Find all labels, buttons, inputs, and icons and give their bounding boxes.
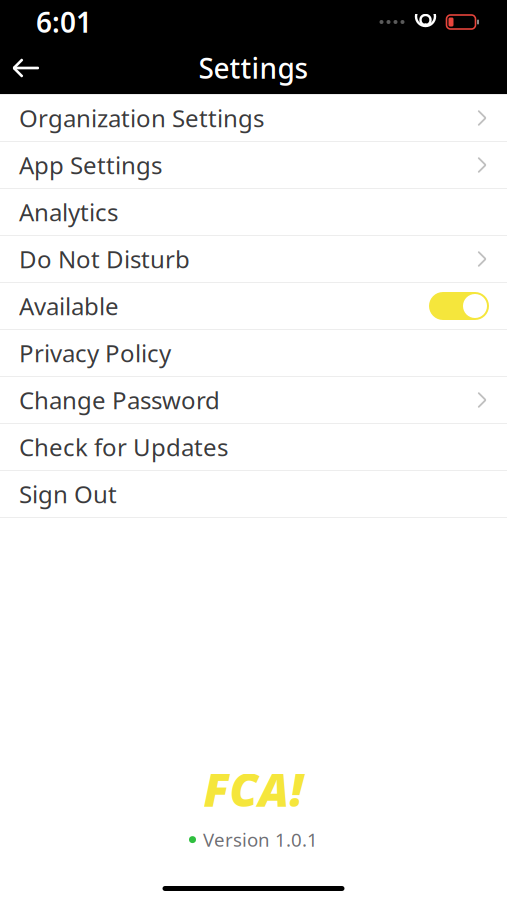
button[interactable]: Analytics <box>0 189 507 236</box>
button[interactable]: Change Password <box>0 377 507 424</box>
staticText: Check for Updates <box>19 431 228 463</box>
staticText: Settings <box>198 49 308 87</box>
staticText: Sign Out <box>19 478 117 510</box>
button[interactable]: App Settings <box>0 142 507 189</box>
button[interactable]: Available <box>0 283 507 330</box>
staticText: Version 1.0.1 <box>203 827 318 852</box>
staticText: Analytics <box>19 196 118 228</box>
button[interactable]: Do Not Disturb <box>0 236 507 283</box>
staticText: FCA! <box>203 759 303 819</box>
button[interactable]: Check for Updates <box>0 424 507 471</box>
staticText: 6:01 <box>36 3 92 41</box>
staticText: Available <box>19 290 119 322</box>
staticText: Privacy Policy <box>19 337 171 369</box>
staticText: Organization Settings <box>19 102 264 134</box>
button[interactable]: Back <box>0 46 52 90</box>
button[interactable]: Privacy Policy <box>0 330 507 377</box>
button[interactable]: Sign Out <box>0 471 507 518</box>
staticText: Change Password <box>19 384 220 416</box>
button[interactable]: Organization Settings <box>0 95 507 142</box>
staticText: Do Not Disturb <box>19 243 190 275</box>
staticText: App Settings <box>19 149 162 181</box>
